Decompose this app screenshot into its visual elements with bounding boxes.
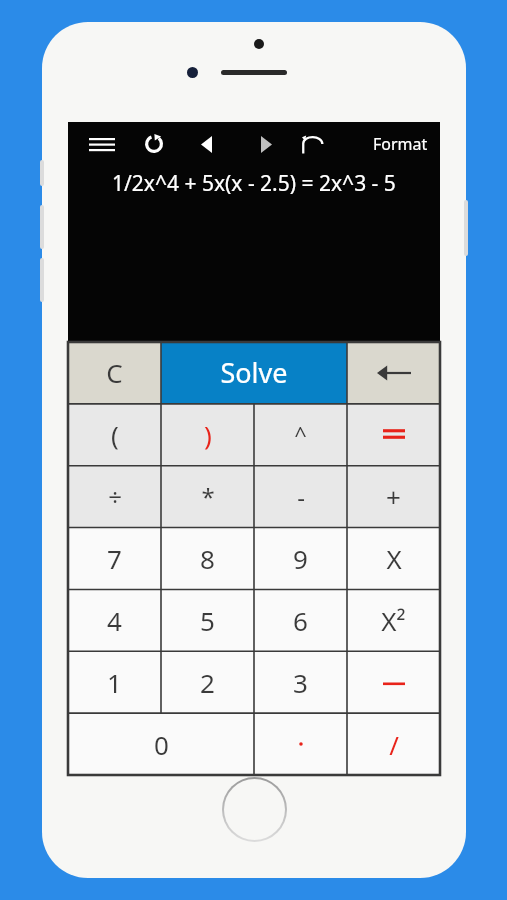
button[interactable]: Menu bbox=[80, 130, 124, 158]
button[interactable]: Redo bbox=[134, 128, 174, 160]
button[interactable]: 8 bbox=[161, 527, 254, 589]
button[interactable]: / bbox=[347, 713, 440, 775]
button[interactable]: 3 bbox=[254, 651, 347, 713]
button[interactable]: ( bbox=[68, 403, 161, 465]
button[interactable]: ÷ bbox=[68, 465, 161, 527]
staticText: / bbox=[389, 727, 399, 762]
staticText: ( bbox=[111, 417, 119, 452]
staticText: + bbox=[386, 479, 401, 514]
button[interactable]: Next bbox=[248, 128, 284, 160]
staticText: 1 bbox=[107, 665, 122, 700]
staticText: ÷ bbox=[108, 480, 122, 513]
button[interactable]: Format bbox=[369, 129, 432, 159]
staticText: 6 bbox=[293, 603, 308, 638]
button[interactable] bbox=[347, 651, 440, 713]
button[interactable]: - bbox=[254, 465, 347, 527]
staticText: X² bbox=[381, 603, 406, 638]
button[interactable]: ) bbox=[161, 403, 254, 465]
button[interactable]: 1 bbox=[68, 651, 161, 713]
staticText: 5 bbox=[200, 603, 215, 638]
staticText: Solve bbox=[220, 354, 288, 391]
button[interactable]: X bbox=[347, 527, 440, 589]
button[interactable]: ^ bbox=[254, 403, 347, 465]
button[interactable]: Home bbox=[224, 779, 285, 840]
button[interactable]: 4 bbox=[68, 589, 161, 651]
button[interactable]: 0 bbox=[68, 713, 254, 775]
button[interactable]: + bbox=[347, 465, 440, 527]
staticText: C bbox=[106, 355, 123, 390]
button[interactable]: 7 bbox=[68, 527, 161, 589]
staticText: X bbox=[386, 541, 402, 576]
button[interactable]: 2 bbox=[161, 651, 254, 713]
staticText: * bbox=[201, 480, 215, 513]
staticText: 9 bbox=[293, 541, 308, 576]
staticText: 0 bbox=[154, 727, 169, 762]
button[interactable]: 6 bbox=[254, 589, 347, 651]
staticText: 8 bbox=[200, 541, 215, 576]
button[interactable]: Solve bbox=[161, 342, 347, 403]
button[interactable]: C bbox=[68, 342, 161, 403]
button[interactable]: Previous bbox=[188, 128, 224, 160]
button[interactable]: 5 bbox=[161, 589, 254, 651]
button[interactable] bbox=[347, 342, 440, 403]
staticText: 1/2x^4 + 5x(x - 2.5) = 2x^3 - 5 bbox=[112, 169, 396, 198]
staticText: Format bbox=[373, 133, 428, 155]
button[interactable]: X² bbox=[347, 589, 440, 651]
staticText: ^ bbox=[294, 419, 307, 449]
staticText: 2 bbox=[200, 665, 215, 700]
button[interactable]: Undo bbox=[293, 128, 331, 160]
button[interactable]: 9 bbox=[254, 527, 347, 589]
staticText: 3 bbox=[293, 665, 308, 700]
button[interactable]: * bbox=[161, 465, 254, 527]
button[interactable] bbox=[347, 403, 440, 465]
staticText: ) bbox=[204, 417, 212, 452]
staticText: 7 bbox=[107, 541, 122, 576]
staticText: 4 bbox=[107, 603, 122, 638]
button[interactable] bbox=[254, 713, 347, 775]
staticText: - bbox=[297, 480, 305, 513]
